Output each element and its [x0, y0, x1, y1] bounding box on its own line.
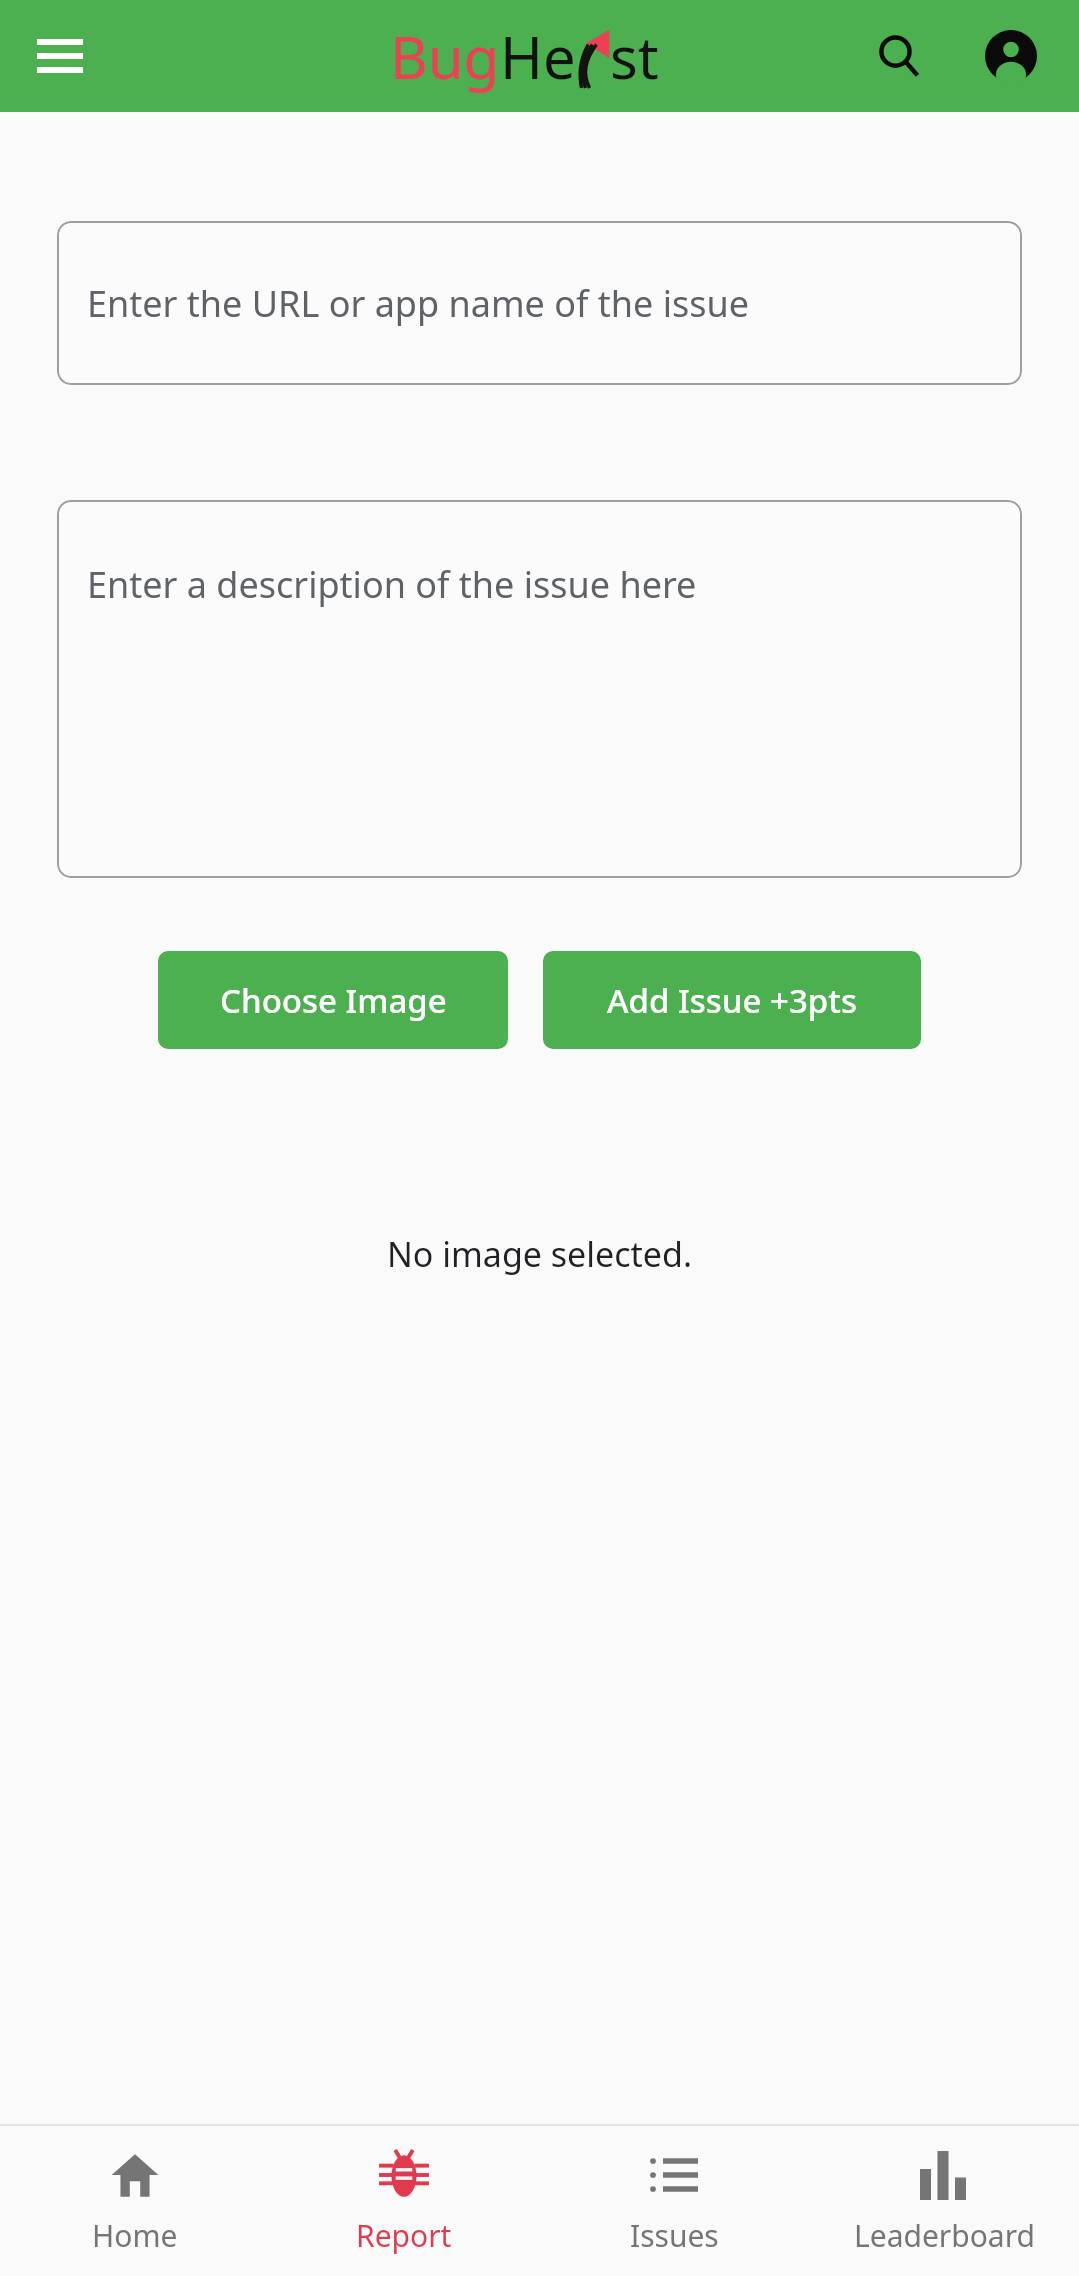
staticText: Leaderboard: [854, 2215, 1035, 2256]
staticText: Choose Image: [220, 978, 447, 1023]
button[interactable]: Leaderboard: [809, 2126, 1079, 2276]
button[interactable]: Issues: [539, 2126, 809, 2276]
staticText: Enter a description of the issue here: [87, 560, 697, 609]
button[interactable]: Enter the URL or app name of the issue: [57, 221, 1022, 385]
button[interactable]: Menu: [24, 20, 96, 92]
button[interactable]: Enter a description of the issue here: [57, 500, 1022, 878]
staticText: He: [500, 17, 576, 96]
button[interactable]: Search: [859, 16, 939, 96]
button[interactable]: Report: [269, 2126, 539, 2276]
staticText: Report: [356, 2215, 452, 2256]
staticText: st: [610, 17, 659, 96]
staticText: No image selected.: [0, 1231, 1079, 1277]
staticText: Bug: [390, 17, 500, 96]
staticText: Enter the URL or app name of the issue: [87, 279, 750, 328]
button[interactable]: Add Issue +3pts: [543, 951, 921, 1049]
button[interactable]: Account: [971, 16, 1051, 96]
staticText: Home: [92, 2215, 178, 2256]
staticText: Add Issue +3pts: [607, 978, 857, 1023]
button[interactable]: Home: [0, 2126, 269, 2276]
button[interactable]: Choose Image: [158, 951, 508, 1049]
staticText: Issues: [630, 2215, 719, 2256]
